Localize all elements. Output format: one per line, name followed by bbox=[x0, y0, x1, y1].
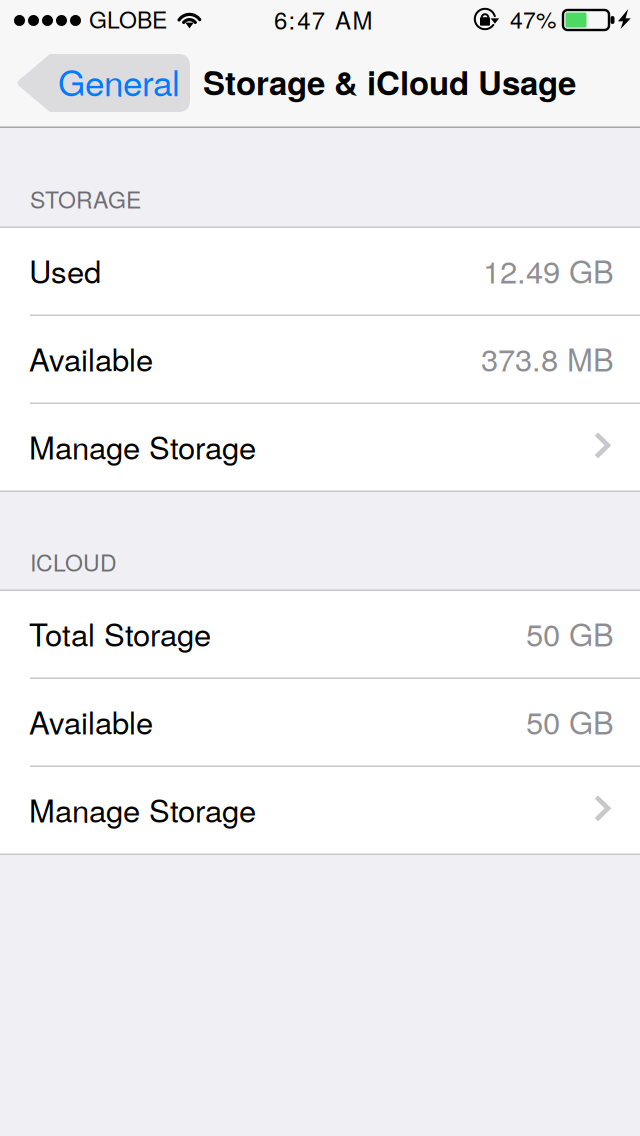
staticText: 373.8 MB bbox=[481, 336, 614, 380]
button[interactable]: Used bbox=[0, 228, 640, 314]
staticText: Available bbox=[29, 336, 153, 380]
button[interactable]: Manage Storage bbox=[0, 404, 640, 490]
button[interactable]: General bbox=[16, 54, 190, 112]
staticText: Manage Storage bbox=[29, 787, 256, 831]
staticText: 12.49 GB bbox=[483, 248, 614, 292]
button[interactable]: Available bbox=[0, 316, 640, 402]
staticText: Manage Storage bbox=[29, 424, 256, 468]
staticText: 50 GB bbox=[526, 699, 614, 743]
staticText: 47% bbox=[510, 2, 556, 35]
staticText: ICLOUD bbox=[30, 545, 117, 578]
staticText: Total Storage bbox=[29, 611, 211, 655]
staticText: General bbox=[58, 56, 180, 106]
staticText: 6:47 AM bbox=[274, 2, 373, 36]
staticText: GLOBE bbox=[89, 2, 167, 35]
staticText: Storage & iCloud Usage bbox=[203, 58, 576, 105]
button[interactable]: Available bbox=[0, 679, 640, 765]
staticText: 50 GB bbox=[526, 611, 614, 655]
staticText: Used bbox=[29, 248, 101, 292]
button[interactable]: Total Storage bbox=[0, 591, 640, 677]
staticText: Available bbox=[29, 699, 153, 743]
button[interactable]: Manage Storage bbox=[0, 767, 640, 853]
staticText: STORAGE bbox=[30, 182, 141, 215]
